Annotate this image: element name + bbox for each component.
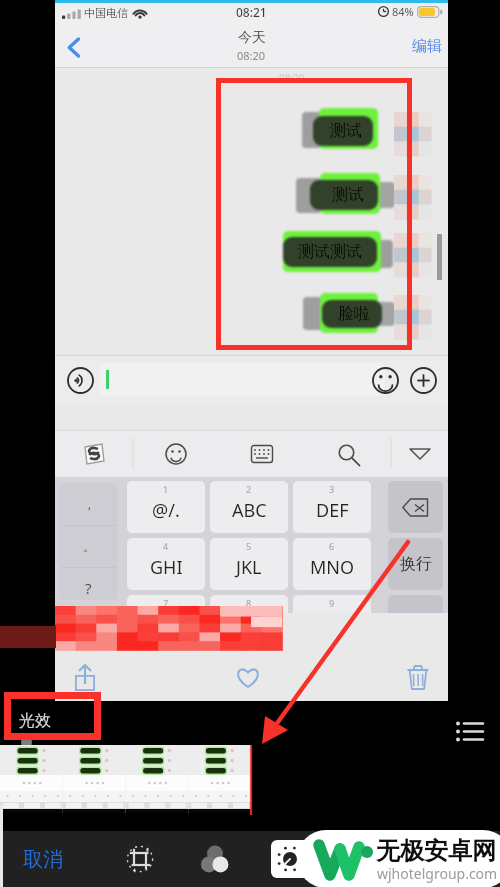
staticText: 取消 bbox=[23, 847, 63, 872]
staticText: 3 bbox=[329, 483, 335, 495]
staticText: WXYZ bbox=[308, 612, 356, 637]
button[interactable]: 。 bbox=[59, 525, 118, 567]
button[interactable]: Hide keyboard bbox=[391, 430, 448, 477]
button[interactable]: search bbox=[305, 430, 391, 477]
staticText: 1 bbox=[163, 483, 169, 495]
button[interactable]: List bbox=[452, 713, 488, 749]
staticText: JKL bbox=[236, 555, 262, 580]
button[interactable] bbox=[283, 231, 381, 272]
staticText: TUV bbox=[232, 612, 266, 637]
staticText: PQRS bbox=[143, 612, 190, 637]
staticText: 测试 bbox=[332, 185, 364, 205]
staticText: MNO bbox=[310, 555, 355, 580]
button[interactable]: kb bbox=[219, 430, 305, 477]
button[interactable]: 取消 bbox=[23, 847, 63, 872]
button[interactable]: 2 bbox=[210, 481, 288, 533]
button[interactable]: Backspace bbox=[388, 481, 443, 533]
button[interactable]: 3 bbox=[293, 481, 371, 533]
staticText: 光效 bbox=[19, 711, 51, 731]
button[interactable]: Input method bbox=[55, 430, 133, 477]
button[interactable]: Back bbox=[55, 28, 93, 66]
button[interactable]: 编辑 bbox=[412, 37, 442, 56]
staticText: 测试测试 bbox=[298, 242, 362, 262]
button[interactable]: Voice message bbox=[63, 363, 97, 397]
button[interactable]: 9 bbox=[293, 595, 371, 647]
button[interactable]: Crop and rotate bbox=[116, 835, 164, 883]
staticText: 脸啦 bbox=[338, 304, 370, 324]
staticText: 5 bbox=[246, 540, 252, 552]
button[interactable]: ， bbox=[59, 483, 118, 525]
staticText: 换行 bbox=[400, 554, 432, 574]
button[interactable]: 7 bbox=[127, 595, 205, 647]
staticText: 9 bbox=[329, 597, 335, 609]
button[interactable] bbox=[319, 108, 378, 149]
button[interactable] bbox=[320, 293, 378, 333]
staticText: 编辑 bbox=[412, 37, 442, 56]
button[interactable]: Delete bbox=[398, 657, 438, 697]
button[interactable]: ? bbox=[59, 567, 118, 609]
staticText: @/. bbox=[152, 498, 180, 523]
staticText: 4 bbox=[163, 540, 169, 552]
staticText: 测试 bbox=[330, 121, 362, 141]
button[interactable]: Share bbox=[65, 657, 105, 697]
button[interactable] bbox=[100, 363, 385, 396]
button[interactable]: 6 bbox=[293, 538, 371, 590]
staticText: wjhotelgroup.com bbox=[377, 864, 498, 883]
staticText: 08:20 bbox=[237, 48, 266, 63]
staticText: 08:21 bbox=[236, 4, 267, 20]
button[interactable]: 4 bbox=[127, 538, 205, 590]
staticText: GHI bbox=[150, 555, 183, 580]
staticText: ABC bbox=[232, 498, 267, 523]
staticText: ， bbox=[83, 497, 95, 512]
button[interactable]: 8 bbox=[210, 595, 288, 647]
staticText: ? bbox=[85, 578, 92, 598]
staticText: 2 bbox=[246, 483, 252, 495]
button[interactable] bbox=[320, 173, 380, 214]
button[interactable]: 5 bbox=[210, 538, 288, 590]
button[interactable]: smile bbox=[133, 430, 219, 477]
button[interactable]: More bbox=[406, 363, 440, 397]
button[interactable]: Filters bbox=[191, 835, 239, 883]
staticText: 7 bbox=[163, 597, 169, 609]
staticText: 中国电信 bbox=[84, 6, 128, 20]
button[interactable]: 换行 bbox=[388, 538, 443, 590]
staticText: 6 bbox=[329, 540, 335, 552]
staticText: 今天 bbox=[238, 29, 266, 47]
button[interactable]: 1 bbox=[127, 481, 205, 533]
staticText: 无极安卓网 bbox=[376, 836, 496, 866]
staticText: 08:20 bbox=[279, 71, 305, 85]
staticText: 84% bbox=[392, 4, 414, 19]
button[interactable]: Emoji bbox=[368, 363, 402, 397]
staticText: DEF bbox=[316, 498, 349, 523]
staticText: 。 bbox=[83, 539, 95, 554]
button[interactable]: Favourite bbox=[228, 657, 268, 697]
staticText: 8 bbox=[246, 597, 252, 609]
button[interactable]: Space bbox=[388, 595, 443, 647]
